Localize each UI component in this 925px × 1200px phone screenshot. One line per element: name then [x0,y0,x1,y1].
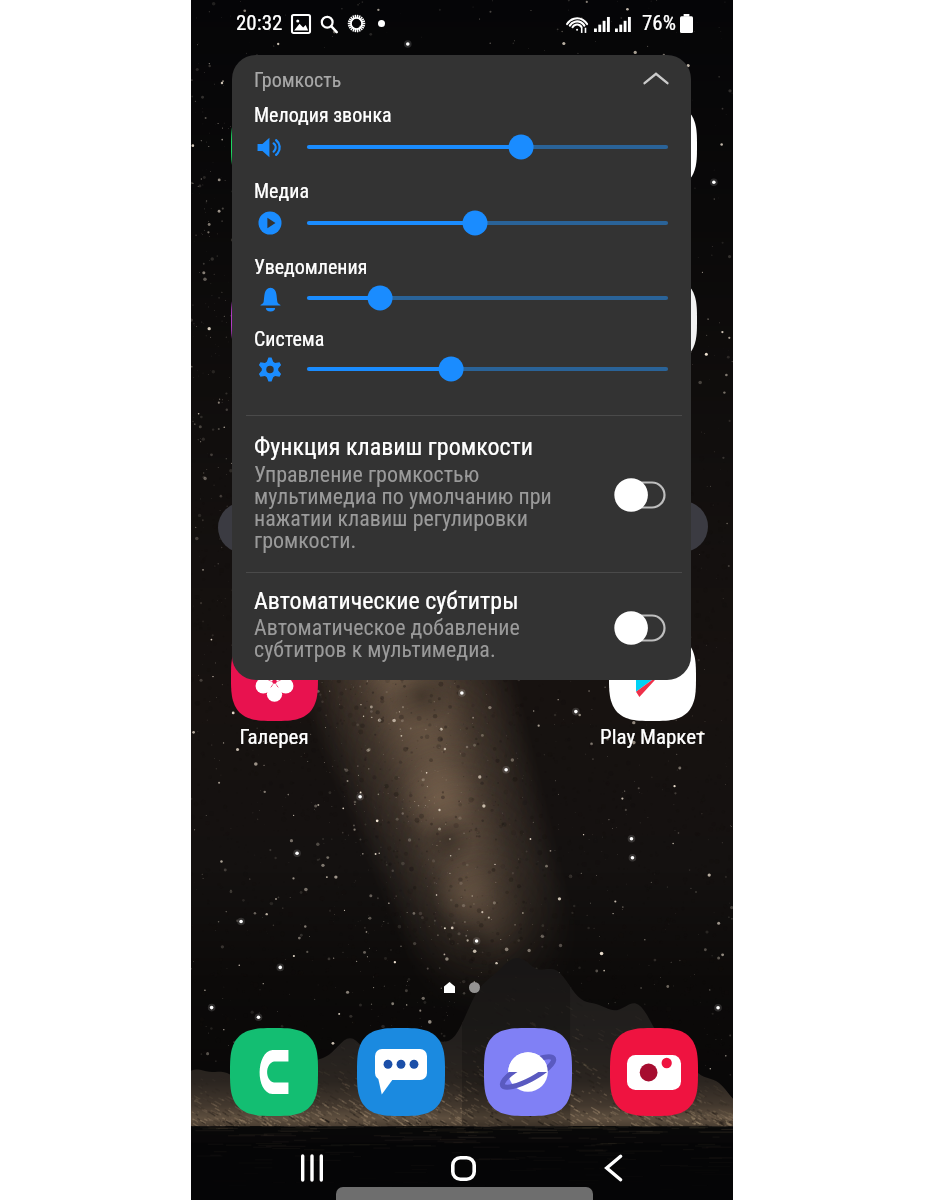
button[interactable]: Back [585,1140,641,1196]
button[interactable]: Volume slider [298,353,677,385]
button[interactable]: Folder [657,501,708,552]
staticText: Уведомления [254,255,368,278]
staticText: Медиа [254,179,309,202]
staticText: Управление громкостью мультимедиа по умо… [254,462,552,554]
staticText: 20:32 [236,11,283,36]
button[interactable]: Автоматические субтитры [232,574,691,680]
staticText: Автоматическое добавление субтитров к му… [254,615,520,663]
button[interactable]: Home [435,1140,491,1196]
staticText: Громкость [254,68,342,91]
button[interactable]: Folder [218,502,269,553]
staticText: Функция клавиш громкости [254,433,534,461]
button[interactable]: App [358,277,444,363]
button[interactable]: App [485,277,571,363]
button[interactable]: Camera [610,1028,698,1116]
staticText: Play Маркет [600,725,705,750]
button[interactable]: App [231,103,317,189]
button[interactable]: Громкость [232,55,691,103]
button[interactable]: App [611,277,697,363]
button[interactable]: Recents [284,1140,340,1196]
button[interactable]: Функция клавиш громкости [232,433,691,572]
button[interactable]: App [358,103,444,189]
button[interactable]: Галерея [209,634,339,750]
button[interactable]: Volume slider [298,282,677,314]
button[interactable]: App [611,103,697,189]
staticText: 76% [642,11,677,36]
button[interactable]: Play Маркет [587,634,717,750]
staticText: Галерея [239,725,309,750]
button[interactable]: Volume slider [298,207,677,239]
button[interactable]: App [231,277,317,363]
staticText: Автоматические субтитры [254,587,519,615]
button[interactable]: Toggle [616,614,666,642]
button[interactable]: Toggle [616,481,666,509]
button[interactable]: Messages [357,1028,445,1116]
staticText: Мелодия звонка [254,103,392,126]
button[interactable]: Phone [230,1028,318,1116]
button[interactable]: Internet [484,1028,572,1116]
button[interactable]: Volume slider [298,131,677,163]
button[interactable]: App [485,103,571,189]
staticText: Система [254,327,325,350]
